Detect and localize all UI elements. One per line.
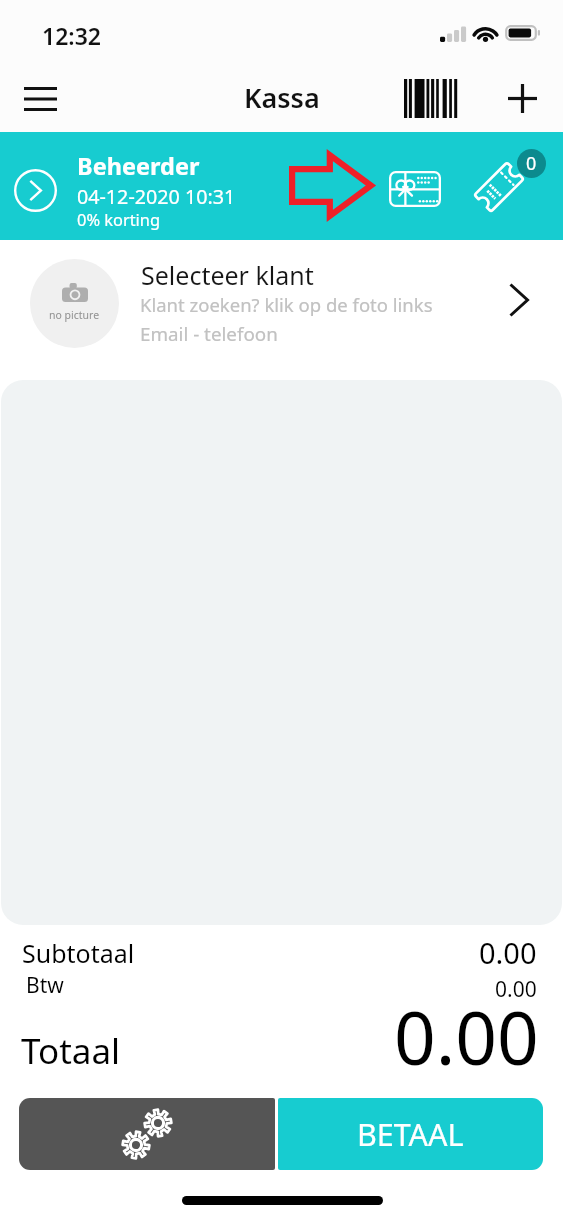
button[interactable]: Gift card: [389, 171, 441, 207]
button[interactable]: Menu: [12, 75, 68, 123]
staticText: 0.00: [394, 987, 539, 1086]
button[interactable]: Scan barcode: [394, 75, 468, 121]
button[interactable]: BETAAL: [278, 1098, 543, 1170]
button[interactable]: no picture: [0, 240, 563, 380]
button[interactable]: Select customer: [497, 277, 541, 323]
staticText: Btw: [26, 971, 64, 1000]
staticText: BETAAL: [357, 1113, 464, 1155]
staticText: Totaal: [21, 1027, 121, 1075]
staticText: Kassa: [244, 79, 320, 116]
staticText: Klant zoeken? klik op de foto links: [140, 292, 433, 317]
staticText: 0.00: [495, 975, 537, 1004]
staticText: 0: [526, 151, 537, 176]
button[interactable]: Settings: [19, 1098, 275, 1170]
staticText: Beheerder: [77, 150, 200, 182]
staticText: no picture: [49, 308, 100, 322]
staticText: Email - telefoon: [140, 321, 278, 347]
staticText: 04-12-2020 10:31: [77, 183, 236, 210]
staticText: 12:32: [42, 20, 101, 51]
button[interactable]: Session: [14, 169, 57, 212]
staticText: Selecteer klant: [141, 258, 314, 292]
button[interactable]: Add: [492, 75, 552, 121]
staticText: 0% korting: [77, 208, 161, 230]
staticText: 0.00: [479, 933, 537, 972]
button[interactable]: Parked receipts: [468, 156, 530, 218]
staticText: Subtotaal: [22, 936, 135, 970]
